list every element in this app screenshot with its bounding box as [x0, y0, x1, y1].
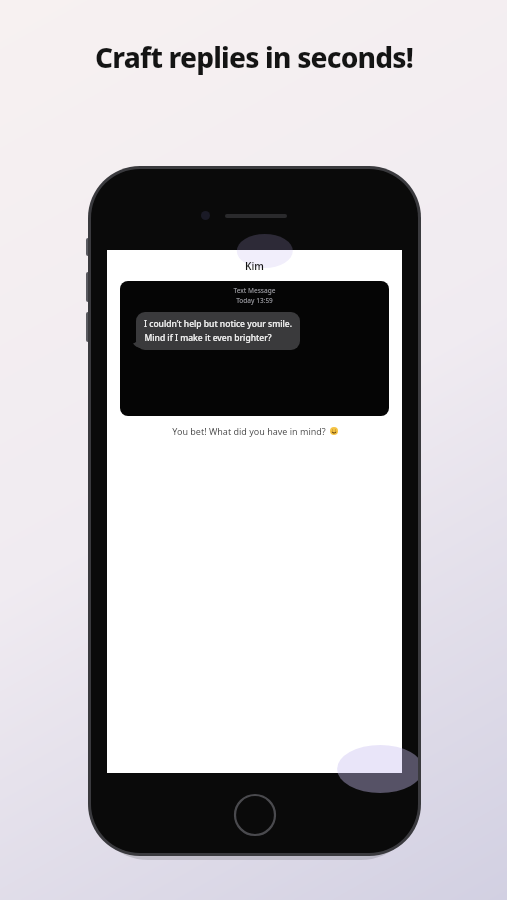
staticText: Mind if I make it even brighter? [144, 332, 272, 344]
staticText: Kim [245, 259, 264, 273]
button[interactable]: Home [233, 793, 277, 837]
button[interactable]: Text Message [120, 281, 389, 416]
button[interactable]: I couldn’t help but notice your smile. [136, 312, 300, 350]
staticText: I couldn’t help but notice your smile. [144, 318, 292, 330]
staticText: Craft replies in seconds! [95, 38, 413, 76]
staticText: You bet! What did you have in mind? [172, 425, 326, 437]
button[interactable]: Kim [107, 259, 402, 273]
staticText: Today 13:59 [236, 296, 273, 305]
button[interactable]: You bet! What did you have in mind? [107, 425, 402, 437]
staticText: Text Message [233, 286, 276, 295]
